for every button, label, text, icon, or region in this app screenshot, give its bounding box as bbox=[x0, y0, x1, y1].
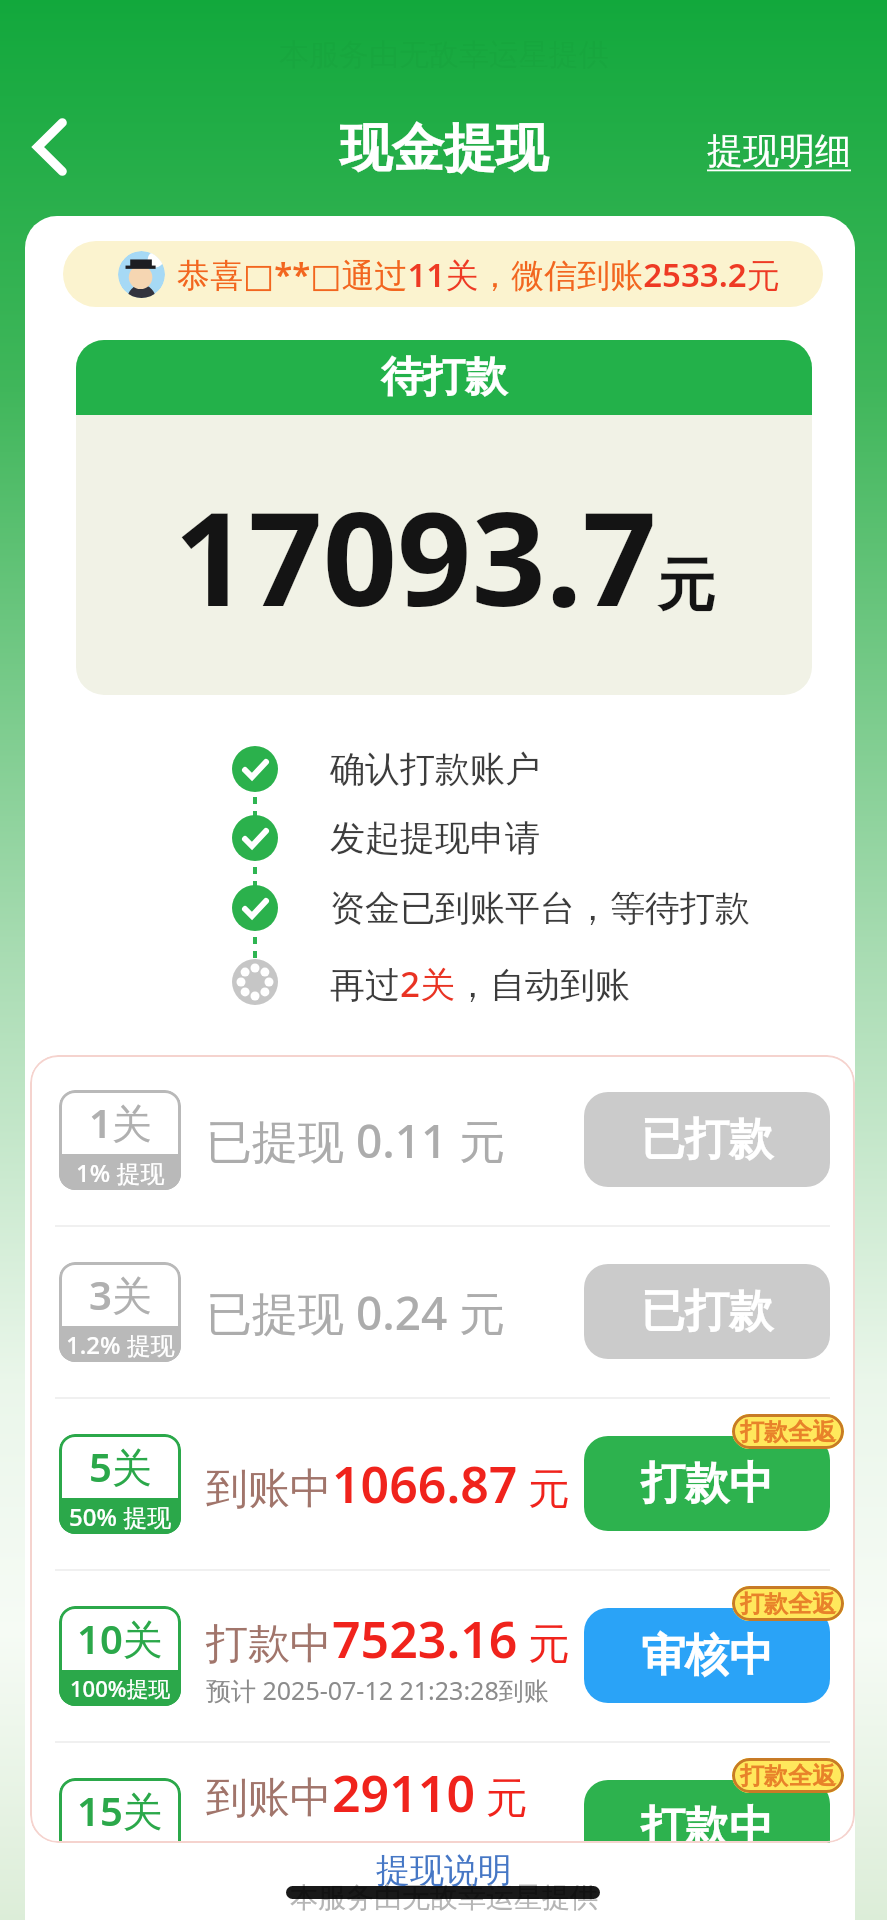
button[interactable]: 3关 bbox=[30, 1227, 855, 1397]
staticText: 打款全返 bbox=[740, 1417, 836, 1447]
staticText: 打款全返 bbox=[740, 1761, 836, 1791]
staticText: 15关 bbox=[77, 1783, 163, 1838]
staticText: 本服务由无敌幸运星提供 bbox=[290, 1880, 598, 1915]
staticText: 发起提现申请 bbox=[330, 816, 540, 860]
staticText: 再过2关，自动到账 bbox=[330, 960, 631, 1008]
staticText: 打款中 bbox=[641, 1456, 773, 1511]
staticText: 已打款 bbox=[641, 1112, 773, 1167]
staticText: 1% 提现 bbox=[76, 1156, 165, 1189]
staticText: 打款全返 bbox=[740, 1589, 836, 1619]
staticText: 1关 bbox=[89, 1095, 152, 1150]
staticText: 打款中7523.16 元 bbox=[206, 1605, 571, 1673]
staticText: 恭喜□**□通过11关，微信到账2533.2元 bbox=[177, 252, 780, 297]
staticText: 已提现 0.11 元 bbox=[206, 1109, 506, 1172]
staticText: 预计 2025-07-12 21:23:28到账 bbox=[206, 1673, 549, 1707]
staticText: 100%提现 bbox=[70, 1673, 171, 1703]
button[interactable]: 提现说明 bbox=[376, 1849, 512, 1892]
staticText: 待打款 bbox=[381, 351, 507, 404]
staticText: 50% 提现 bbox=[69, 1500, 172, 1533]
button[interactable]: 打款中 bbox=[584, 1780, 830, 1843]
staticText: 确认打款账户 bbox=[330, 747, 540, 791]
button[interactable]: 提现明细 bbox=[707, 128, 851, 173]
staticText: 10关 bbox=[77, 1611, 163, 1666]
button[interactable]: 已打款 bbox=[584, 1264, 830, 1359]
staticText: 现金提现 bbox=[340, 116, 548, 182]
button[interactable] bbox=[28, 118, 72, 176]
button[interactable]: 打款中 bbox=[584, 1436, 830, 1531]
staticText: 17093.7 bbox=[174, 467, 657, 644]
staticText: 1.2% 提现 bbox=[66, 1328, 175, 1361]
button[interactable]: 10关 bbox=[30, 1571, 855, 1741]
staticText: 5关 bbox=[89, 1439, 152, 1494]
staticText: 元 bbox=[657, 549, 715, 622]
button[interactable]: 5关 bbox=[30, 1399, 855, 1569]
staticText: 已打款 bbox=[641, 1284, 773, 1339]
button[interactable]: 审核中 bbox=[584, 1608, 830, 1703]
button[interactable]: 恭喜□**□通过11关，微信到账2533.2元 bbox=[63, 241, 823, 307]
staticText: 打款中 bbox=[641, 1800, 773, 1843]
staticText: 3关 bbox=[89, 1267, 152, 1322]
staticText: 到账中29110 元 bbox=[206, 1759, 528, 1827]
staticText: 审核中 bbox=[641, 1628, 773, 1683]
button[interactable]: 已打款 bbox=[584, 1092, 830, 1187]
staticText: 资金已到账平台，等待打款 bbox=[330, 886, 750, 930]
button[interactable]: 1关 bbox=[30, 1055, 855, 1225]
staticText: 到账中1066.87 元 bbox=[206, 1450, 571, 1518]
button[interactable]: 15关 bbox=[30, 1743, 855, 1843]
staticText: 已提现 0.24 元 bbox=[206, 1281, 506, 1344]
